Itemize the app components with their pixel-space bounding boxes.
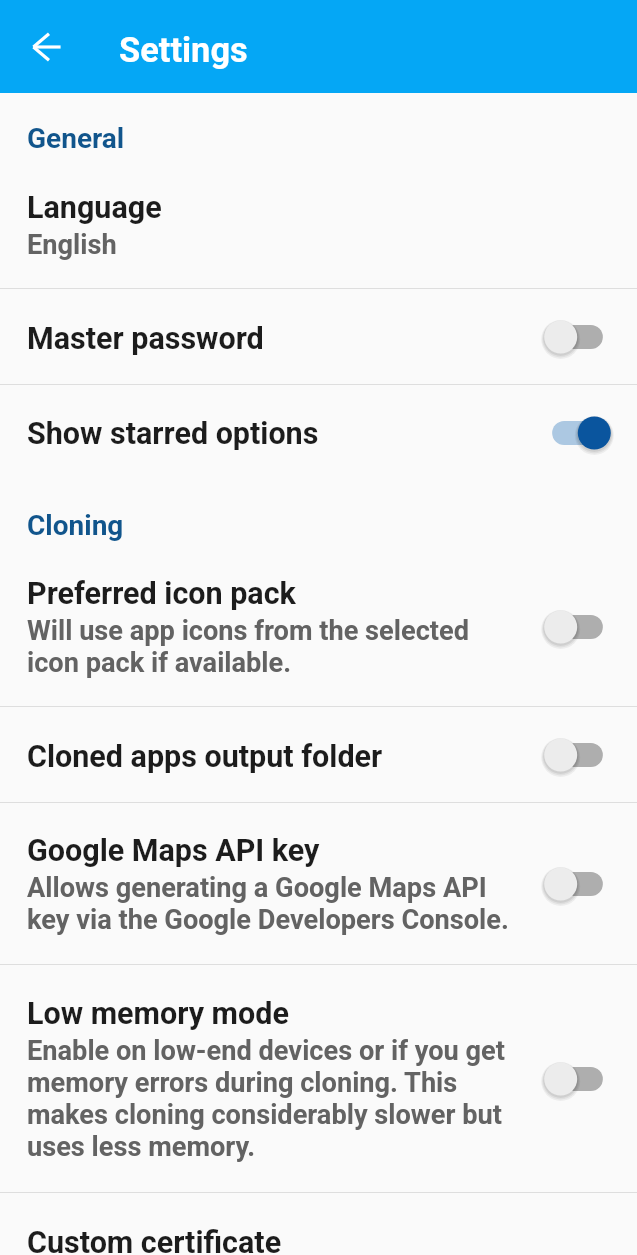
staticText: Settings xyxy=(119,30,248,70)
button[interactable]: Custom certificate xyxy=(0,1193,637,1255)
button[interactable]: Toggle off xyxy=(535,735,620,775)
button[interactable]: Toggle off xyxy=(535,317,620,357)
button[interactable]: Language xyxy=(0,160,637,288)
button[interactable]: Show starred options xyxy=(0,385,637,480)
staticText: Master password xyxy=(27,321,264,357)
staticText: Language xyxy=(27,190,162,226)
button[interactable]: Toggle off xyxy=(535,864,620,904)
button[interactable]: Toggle on xyxy=(535,413,620,453)
button[interactable]: Low memory mode xyxy=(0,965,637,1192)
staticText: Preferred icon pack xyxy=(27,576,296,612)
staticText: Will use app icons from the selected ico… xyxy=(27,615,513,679)
button[interactable]: Back xyxy=(18,19,73,74)
staticText: English xyxy=(27,229,117,261)
staticText: Google Maps API key xyxy=(27,833,320,869)
staticText: Cloning xyxy=(27,509,124,542)
staticText: Custom certificate xyxy=(27,1225,282,1255)
button[interactable]: Google Maps API key xyxy=(0,803,637,964)
staticText: Allows generating a Google Maps API key … xyxy=(27,872,513,936)
button[interactable]: Master password xyxy=(0,289,637,384)
button[interactable]: Preferred icon pack xyxy=(0,547,637,706)
staticText: Show starred options xyxy=(27,416,319,452)
button[interactable]: Toggle off xyxy=(535,607,620,647)
button[interactable]: Toggle off xyxy=(535,1059,620,1099)
button[interactable]: Cloned apps output folder xyxy=(0,707,637,802)
staticText: Low memory mode xyxy=(27,996,289,1032)
staticText: Enable on low-end devices or if you get … xyxy=(27,1035,513,1163)
staticText: General xyxy=(27,122,125,155)
staticText: Cloned apps output folder xyxy=(27,739,383,775)
